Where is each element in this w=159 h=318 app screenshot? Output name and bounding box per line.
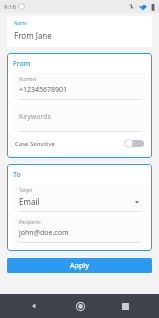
button[interactable]: Name — [7, 16, 152, 47]
staticText: +12345678901 — [19, 85, 68, 95]
button[interactable]: Back — [23, 295, 45, 317]
other: Case Sensitive toggle — [124, 139, 144, 148]
staticText: From — [13, 59, 31, 69]
button[interactable]: Recipients — [13, 216, 146, 243]
staticText: To — [13, 170, 21, 180]
button[interactable]: Keywords — [13, 104, 146, 132]
staticText: Apply — [70, 261, 89, 271]
staticText: Email — [19, 196, 40, 207]
button[interactable]: Recent apps — [114, 295, 136, 317]
staticText: john@doe.com — [19, 228, 69, 238]
button[interactable]: Target — [13, 184, 146, 212]
other: Open target dropdown — [134, 199, 140, 205]
button[interactable]: Apply — [7, 258, 152, 273]
staticText: Name — [14, 20, 27, 26]
button[interactable]: Number — [13, 73, 146, 100]
staticText: Keywords — [19, 112, 51, 122]
button[interactable]: Case Sensitive — [13, 137, 146, 150]
staticText: Target — [19, 187, 33, 193]
staticText: Recipients — [19, 219, 41, 225]
staticText: 9:16 — [4, 3, 16, 11]
button[interactable]: Home — [69, 295, 91, 317]
staticText: Number — [19, 76, 37, 82]
staticText: From Jane — [14, 30, 52, 41]
staticText: Case Sensitive — [15, 140, 55, 148]
